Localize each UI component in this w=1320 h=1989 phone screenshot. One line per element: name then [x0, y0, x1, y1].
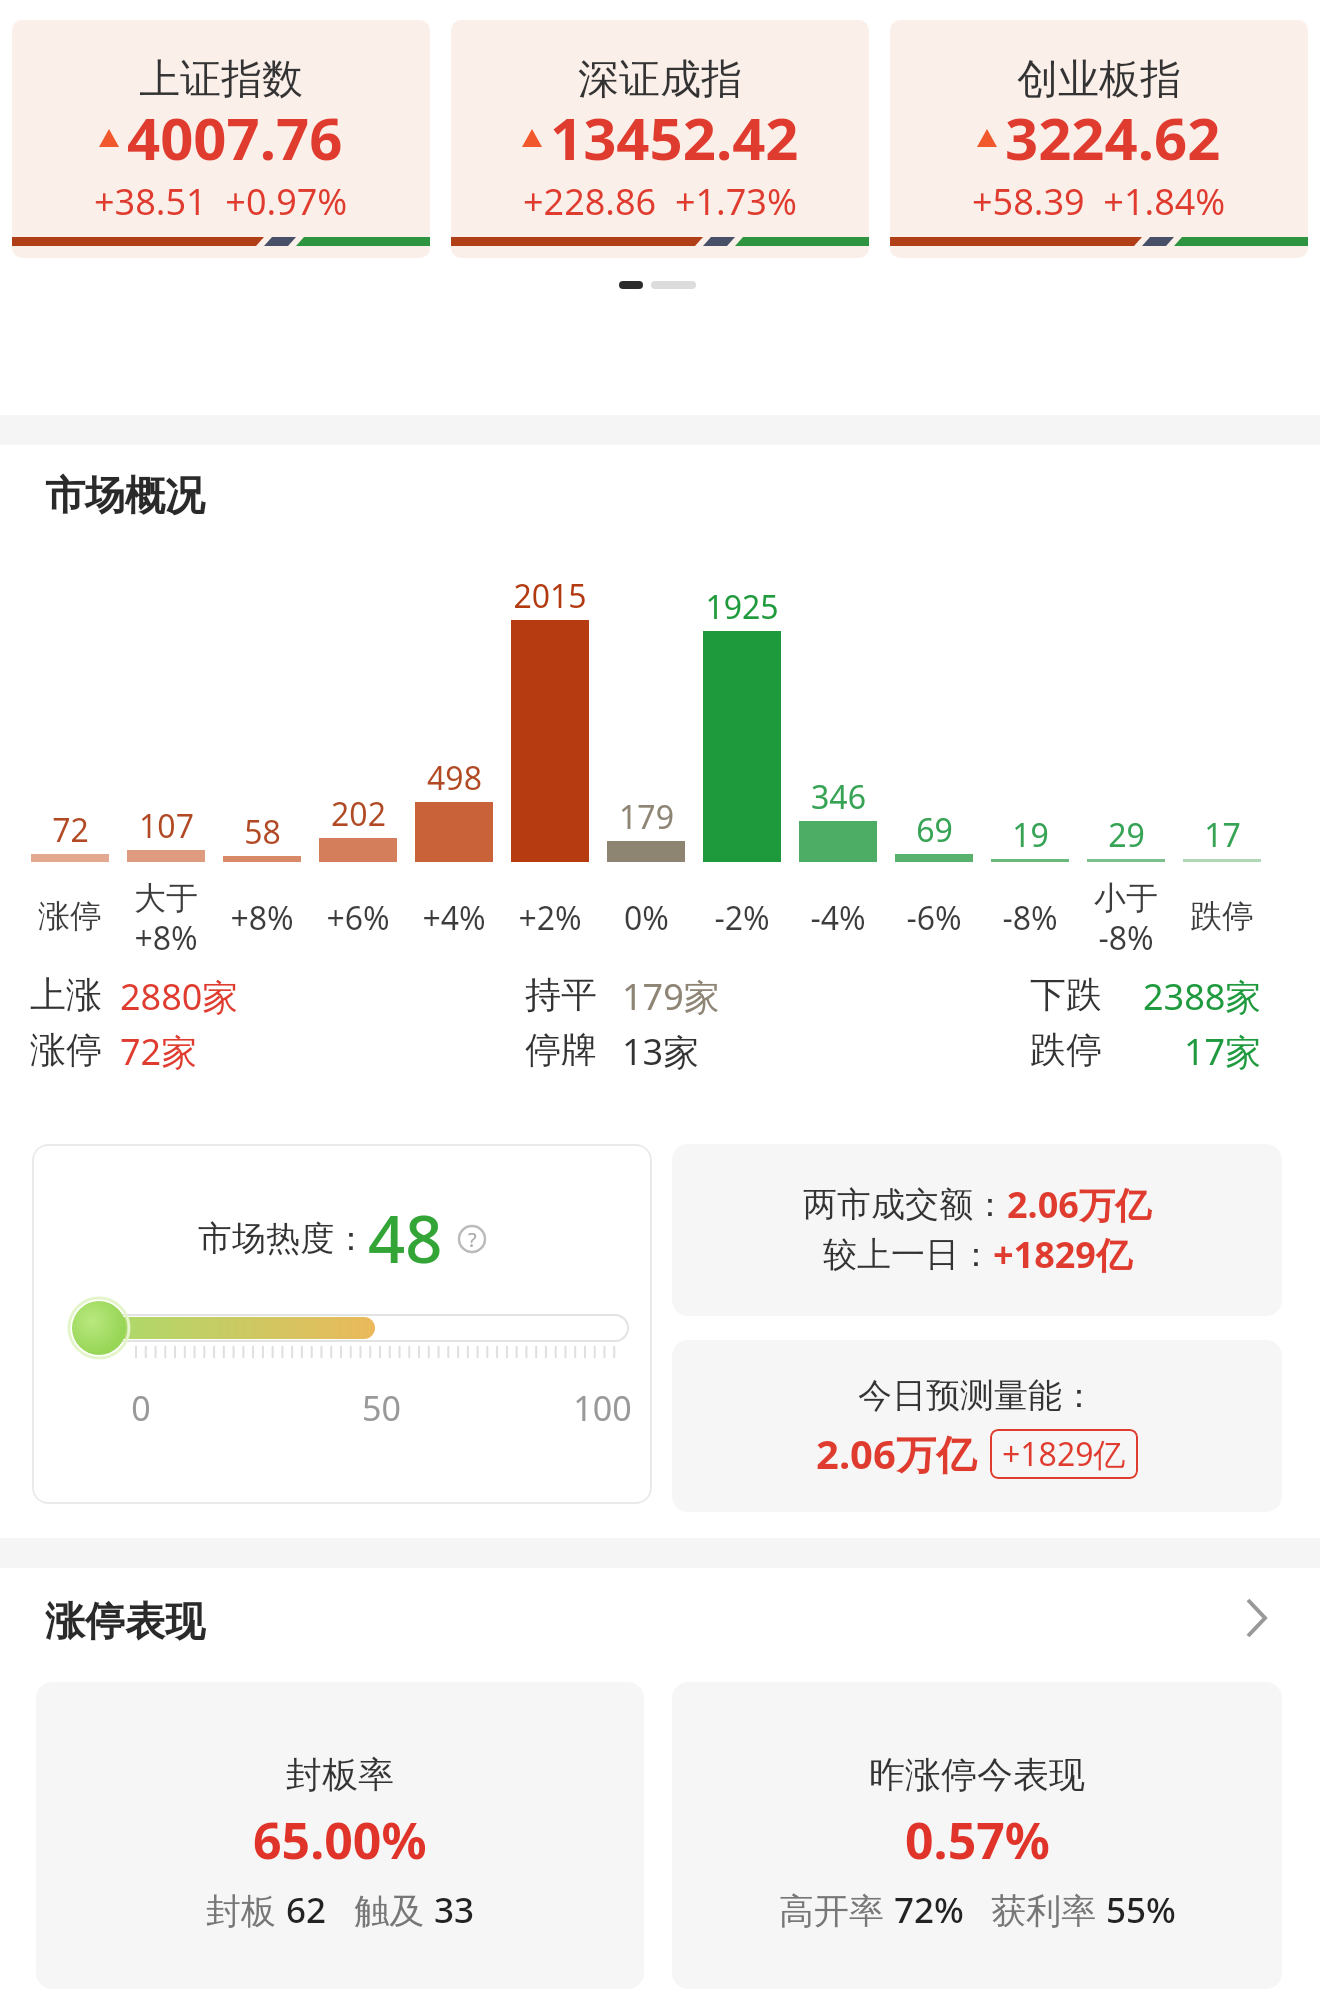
button[interactable]: 市场热度：: [32, 1144, 652, 1504]
staticText: 19: [1012, 813, 1049, 857]
staticText: +4%: [422, 896, 486, 940]
staticText: 0%: [624, 896, 669, 940]
staticText: 62: [286, 1886, 327, 1934]
staticText: +8%: [230, 896, 294, 940]
staticText: +2%: [518, 896, 582, 940]
staticText: 封板率: [286, 1752, 394, 1797]
staticText: 涨停表现: [45, 1596, 205, 1646]
staticText: 2.06万亿: [1007, 1180, 1151, 1229]
button[interactable]: 上证指数: [12, 20, 430, 258]
staticText: 179家: [622, 972, 720, 1021]
button[interactable]: 深证成指: [451, 20, 869, 258]
staticText: 2015: [513, 574, 587, 618]
staticText: 今日预测量能：: [858, 1374, 1096, 1417]
staticText: 48: [368, 1194, 443, 1283]
staticText: 72家: [120, 1027, 198, 1076]
staticText: +6%: [326, 896, 390, 940]
staticText: 封板: [206, 1886, 286, 1934]
staticText: +228.86 +1.73%: [523, 177, 797, 226]
staticText: +1829亿: [993, 1230, 1132, 1279]
staticText: 13452.42: [550, 98, 799, 177]
staticText: 4007.76: [127, 98, 343, 177]
staticText: 持平: [525, 972, 597, 1017]
staticText: 13家: [622, 1027, 700, 1076]
staticText: 跌停: [1030, 1027, 1102, 1072]
button[interactable]: 两市成交额：: [672, 1144, 1282, 1316]
staticText: ?: [468, 1226, 477, 1253]
staticText: 33: [434, 1886, 475, 1934]
staticText: 100: [573, 1385, 632, 1431]
staticText: -6%: [906, 896, 962, 940]
staticText: 高开率: [779, 1886, 894, 1934]
staticText: 29: [1108, 813, 1145, 857]
staticText: 17: [1204, 813, 1241, 857]
staticText: 69: [916, 808, 953, 852]
staticText: 3224.62: [1005, 98, 1221, 177]
staticText: +1829亿: [1002, 1432, 1126, 1476]
staticText: 涨停: [38, 896, 102, 936]
staticText: 2880家: [120, 972, 239, 1021]
staticText: +58.39 +1.84%: [972, 177, 1226, 226]
staticText: +38.51 +0.97%: [94, 177, 348, 226]
staticText: 0: [131, 1385, 151, 1431]
staticText: 深证成指: [578, 54, 742, 106]
staticText: -2%: [714, 896, 770, 940]
staticText: 触及: [327, 1886, 434, 1934]
button[interactable]: 昨涨停今表现: [672, 1682, 1282, 1989]
staticText: 55%: [1106, 1886, 1176, 1934]
button[interactable]: 创业板指: [890, 20, 1308, 258]
button[interactable]: 今日预测量能：: [672, 1340, 1282, 1512]
staticText: 市场热度：: [198, 1217, 368, 1260]
staticText: 大于 +8%: [134, 878, 198, 960]
staticText: 58: [244, 810, 281, 854]
staticText: 17家: [1184, 1027, 1262, 1076]
staticText: 上涨: [30, 972, 102, 1017]
staticText: 获利率: [964, 1886, 1106, 1934]
staticText: 跌停: [1190, 896, 1254, 936]
staticText: 179: [619, 795, 674, 839]
staticText: 2388家: [1143, 972, 1262, 1021]
staticText: 107: [139, 804, 194, 848]
staticText: 50: [362, 1385, 401, 1431]
staticText: 72: [52, 808, 89, 852]
staticText: 昨涨停今表现: [869, 1752, 1085, 1797]
button[interactable]: 封板率: [36, 1682, 644, 1989]
staticText: 下跌: [1030, 972, 1102, 1017]
staticText: 创业板指: [1017, 54, 1181, 106]
staticText: 65.00%: [253, 1806, 427, 1874]
staticText: 上证指数: [139, 54, 303, 106]
staticText: 346: [811, 775, 866, 819]
staticText: 0.57%: [905, 1806, 1050, 1874]
staticText: 市场概况: [45, 470, 205, 520]
staticText: 72%: [894, 1886, 964, 1934]
staticText: 涨停: [30, 1027, 102, 1072]
staticText: 停牌: [525, 1027, 597, 1072]
button[interactable]: 涨停表现: [0, 1590, 1320, 1660]
staticText: 小于 -8%: [1094, 878, 1158, 960]
staticText: 较上一日：: [823, 1233, 993, 1276]
staticText: 1925: [705, 585, 779, 629]
staticText: 两市成交额：: [803, 1183, 1007, 1226]
staticText: 498: [427, 756, 482, 800]
staticText: 202: [331, 792, 386, 836]
staticText: -4%: [810, 896, 866, 940]
staticText: -8%: [1002, 896, 1058, 940]
staticText: 2.06万亿: [816, 1426, 976, 1481]
